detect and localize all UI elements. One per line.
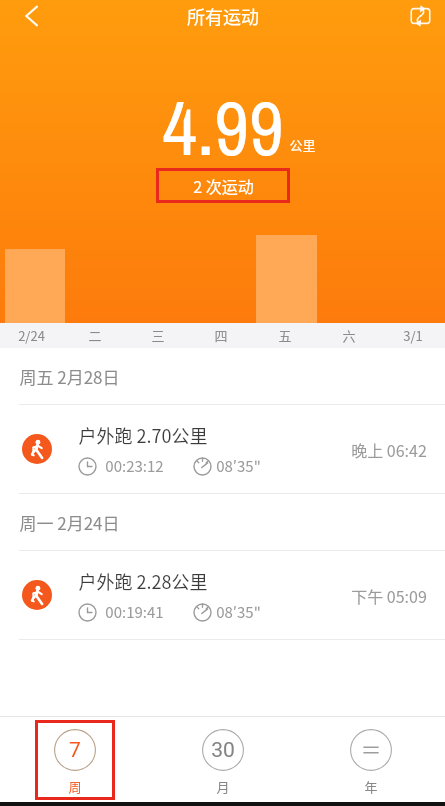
staticText: 周五 2月28日 [19, 364, 120, 389]
button[interactable]: Back [0, 0, 62, 32]
staticText: 三 [151, 326, 165, 345]
staticText: 所有运动 [187, 3, 259, 29]
button[interactable]: 30 [149, 717, 297, 806]
staticText: 4.99 [162, 76, 284, 178]
staticText: 四 [214, 326, 228, 345]
staticText: 08′35" [216, 455, 261, 477]
staticText: 公里 [289, 135, 316, 154]
staticText: 户外跑 2.28公里 [78, 568, 208, 594]
staticText: 六 [342, 326, 356, 345]
staticText: 2 次运动 [193, 174, 254, 197]
button[interactable]: 7 [0, 717, 149, 806]
staticText: 二 [88, 326, 102, 345]
staticText: 年 [364, 777, 378, 796]
button[interactable]: 年 [297, 717, 445, 806]
staticText: 下午 05:09 [351, 584, 427, 607]
staticText: 00:19:41 [105, 601, 164, 623]
staticText: 周 [68, 777, 82, 796]
staticText: 晚上 06:42 [351, 438, 427, 461]
staticText: 7 [69, 738, 81, 763]
staticText: 00:23:12 [105, 455, 164, 477]
staticText: 周一 2月24日 [19, 510, 120, 535]
staticText: 2/24 [18, 326, 45, 345]
button[interactable]: 2 次运动 [156, 168, 290, 203]
button[interactable]: Sync [396, 0, 445, 32]
staticText: 08′35" [216, 601, 261, 623]
staticText: 月 [216, 777, 230, 796]
staticText: 户外跑 2.70公里 [78, 422, 208, 448]
button[interactable]: 户外跑 2.28公里 [0, 551, 445, 639]
staticText: 五 [278, 326, 292, 345]
button[interactable]: 户外跑 2.70公里 [0, 405, 445, 493]
staticText: 30 [211, 738, 235, 763]
staticText: 3/1 [403, 326, 423, 345]
